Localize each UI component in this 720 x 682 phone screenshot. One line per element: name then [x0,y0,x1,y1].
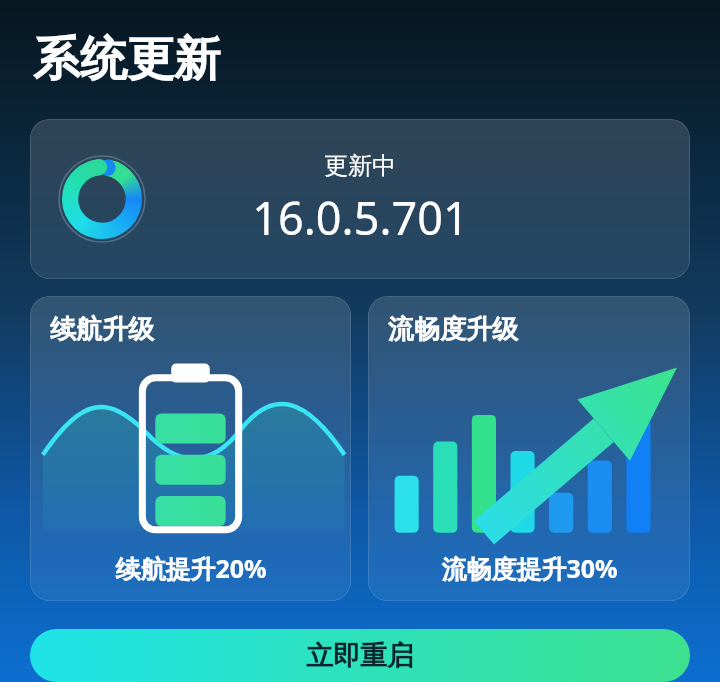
staticText: 续航升级 [50,313,154,346]
staticText: 系统更新 [33,30,221,89]
button[interactable]: 续航升级 [30,296,351,601]
button[interactable]: 立即重启 [30,629,690,682]
button[interactable]: 流畅度升级 [368,296,690,601]
staticText: 流畅度升级 [388,313,518,346]
other: Update progress [58,155,146,243]
staticText: 更新中 [324,151,396,181]
staticText: 续航提升20% [115,551,267,585]
staticText: 流畅度提升30% [441,551,618,585]
staticText: 16.0.5.701 [252,187,469,248]
button[interactable]: Update progress [30,119,690,279]
staticText: 立即重启 [306,639,414,673]
